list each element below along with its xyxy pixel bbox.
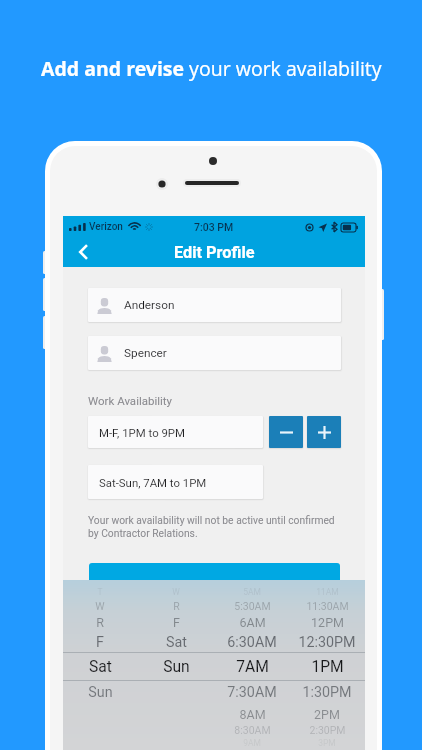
staticText: 8AM xyxy=(239,707,266,722)
staticText: 6AM xyxy=(239,615,266,630)
staticText: Spencer xyxy=(124,346,167,360)
staticText: Anderson xyxy=(124,298,175,312)
staticText: 11:30AM xyxy=(306,600,349,612)
staticText: 1:30PM xyxy=(302,684,352,701)
staticText: M-F, 1PM to 9PM xyxy=(99,426,185,439)
button[interactable]: Remove availability xyxy=(269,416,303,448)
staticText: 9AM xyxy=(243,738,261,748)
staticText: 5:30AM xyxy=(234,600,271,612)
button[interactable]: M-F, 1PM to 9PM xyxy=(88,416,263,448)
staticText: 8:30AM xyxy=(234,724,271,736)
button[interactable]: Sat-Sun, 7AM to 1PM xyxy=(88,465,263,499)
staticText: F xyxy=(96,634,104,651)
staticText: 2PM xyxy=(314,707,340,722)
button[interactable]: Back xyxy=(63,237,103,267)
staticText: T xyxy=(97,587,103,597)
staticText: 12PM xyxy=(311,615,344,630)
staticText: R xyxy=(173,600,180,612)
staticText: Add and revise your work availability xyxy=(41,55,382,82)
button[interactable]: Add availability xyxy=(307,416,341,448)
staticText: R xyxy=(96,615,104,630)
staticText: 7:30AM xyxy=(227,684,277,701)
staticText: Sun xyxy=(88,684,113,701)
staticText: 7:03 PM xyxy=(194,221,234,233)
staticText: Sat xyxy=(89,658,112,676)
staticText: Edit Profile xyxy=(174,243,255,262)
staticText: Sun xyxy=(163,658,190,676)
staticText: Work Availability xyxy=(88,394,173,407)
staticText: 6:30AM xyxy=(227,634,277,651)
button[interactable] xyxy=(89,563,340,590)
button[interactable]: Anderson xyxy=(88,288,341,322)
staticText: W xyxy=(172,587,180,597)
button[interactable]: Spencer xyxy=(88,336,341,370)
staticText: 5AM xyxy=(243,587,261,597)
staticText: 1PM xyxy=(311,658,344,676)
staticText: 3PM xyxy=(318,738,336,748)
staticText: 12:30PM xyxy=(298,634,356,651)
staticText: W xyxy=(95,600,105,612)
staticText: Your work availability will not be activ… xyxy=(88,514,335,540)
staticText: Sat-Sun, 7AM to 1PM xyxy=(99,476,207,489)
staticText: Verizon xyxy=(89,221,123,233)
staticText: 7AM xyxy=(236,658,269,676)
staticText: F xyxy=(173,615,180,630)
staticText: 11AM xyxy=(316,587,339,597)
staticText: 2:30PM xyxy=(309,724,346,736)
staticText: Sat xyxy=(166,634,187,651)
